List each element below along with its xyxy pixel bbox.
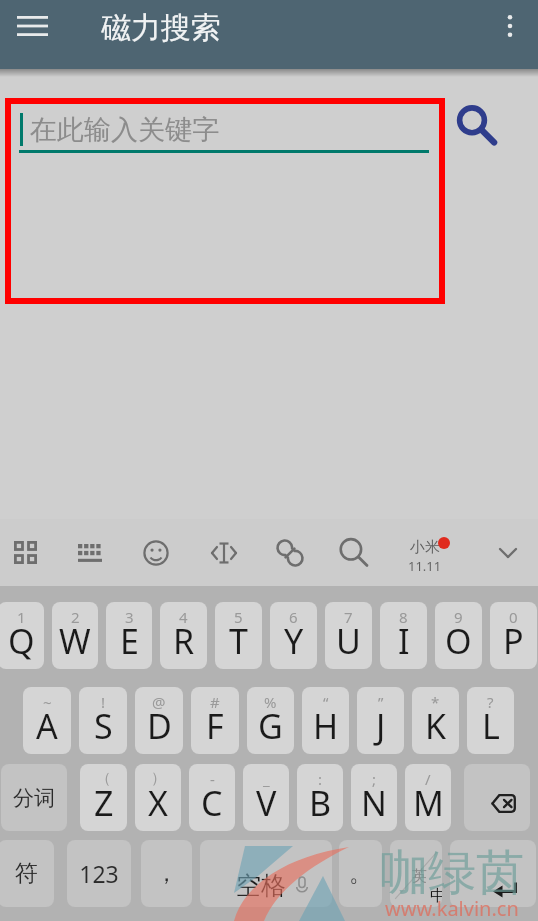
staticText: H [313,703,339,749]
staticText: 7 [344,607,353,627]
staticText: @ [152,692,166,712]
button[interactable]: 4 [160,602,207,669]
staticText: : [318,769,323,789]
button[interactable]: Search [326,519,382,586]
staticText: F [206,703,224,749]
button[interactable]: Keyboard settings [62,519,118,586]
staticText: 9 [454,607,463,627]
button[interactable]: Search [446,93,500,147]
button[interactable]: 空格 [200,840,332,907]
button[interactable]: Move cursor [196,519,252,586]
staticText: ; [372,769,377,789]
button[interactable]: 0 [490,602,537,669]
button[interactable]: Backspace [464,764,530,831]
button[interactable]: 1 [0,602,44,669]
button[interactable]: ! [79,687,127,754]
staticText: - [210,769,215,789]
staticText: 空格 [236,870,286,901]
staticText: N [361,780,387,826]
staticText: I [398,618,410,664]
staticText: 4 [179,607,188,627]
staticText: 123 [79,858,119,889]
staticText: U [336,618,361,664]
staticText: 2 [71,607,80,627]
staticText: 中 [430,886,442,906]
button[interactable]: Switch input language [390,840,442,907]
staticText: X [148,780,168,826]
staticText: / [425,769,431,789]
staticText: P [503,618,524,664]
button[interactable]: _ [243,764,289,831]
button[interactable]: ， [141,840,192,907]
staticText: 磁力搜索 [101,9,221,47]
staticText: “ [323,692,329,712]
button[interactable]: 5 [215,602,262,669]
button[interactable]: （ [80,764,127,831]
staticText: 分词 [13,785,55,811]
staticText: E [120,618,139,664]
button[interactable]: : [297,764,343,831]
staticText: 符 [15,859,38,888]
button[interactable]: “ [302,687,349,754]
button[interactable]: ） [135,764,181,831]
button[interactable]: 符 [0,840,54,907]
button[interactable]: * [412,687,459,754]
staticText: 6 [289,607,298,627]
button[interactable]: / [405,764,451,831]
staticText: J [376,703,386,749]
staticText: T [229,618,248,664]
staticText: * [431,692,440,712]
staticText: L [482,703,500,749]
staticText: D [147,703,172,749]
staticText: ， [155,859,178,888]
button[interactable]: Enter [450,840,536,907]
staticText: 5 [234,607,243,627]
button[interactable]: 6 [270,602,317,669]
staticText: 11.11 [408,557,442,575]
button[interactable]: 7 [325,602,372,669]
staticText: C [201,780,223,826]
button[interactable]: Open navigation drawer [3,0,61,52]
button[interactable]: Clipboard [262,519,318,586]
button[interactable]: 2 [52,602,98,669]
button[interactable]: 9 [435,602,482,669]
staticText: 8 [399,607,408,627]
staticText: 0 [509,607,518,627]
staticText: 小米 [410,538,440,557]
button[interactable]: More options [484,0,536,52]
staticText: 在此输入关键字 [30,113,219,147]
button[interactable]: Emoji [128,519,184,586]
button[interactable]: Hide keyboard [480,519,536,586]
button[interactable]: @ [135,687,183,754]
staticText: A [36,703,58,749]
staticText: B [309,780,332,826]
staticText: www.kalvin.cn [385,895,519,921]
button[interactable]: 分词 [1,764,67,831]
staticText: R [173,618,195,664]
button[interactable]: ~ [23,687,71,754]
staticText: 3 [125,607,134,627]
button[interactable]: 3 [106,602,152,669]
button[interactable]: 123 [67,840,131,907]
staticText: ~ [43,692,52,712]
staticText: （ [96,769,111,788]
button[interactable]: ? [467,687,514,754]
staticText: O [445,618,472,664]
button[interactable]: ” [357,687,404,754]
button[interactable]: Mi 11.11 [397,519,453,586]
staticText: 1 [17,607,26,627]
button[interactable]: # [191,687,239,754]
button[interactable]: - [189,764,235,831]
button[interactable]: ; [351,764,397,831]
staticText: 英 [412,867,427,886]
button[interactable]: 。 [339,840,382,907]
staticText: V [256,780,277,826]
staticText: Y [284,618,304,664]
staticText: % [264,692,277,712]
button[interactable]: Keyboard layouts [0,519,53,586]
staticText: ? [487,692,494,712]
staticText: ” [378,692,384,712]
staticText: K [425,703,447,749]
button[interactable]: % [247,687,294,754]
button[interactable]: 8 [380,602,427,669]
